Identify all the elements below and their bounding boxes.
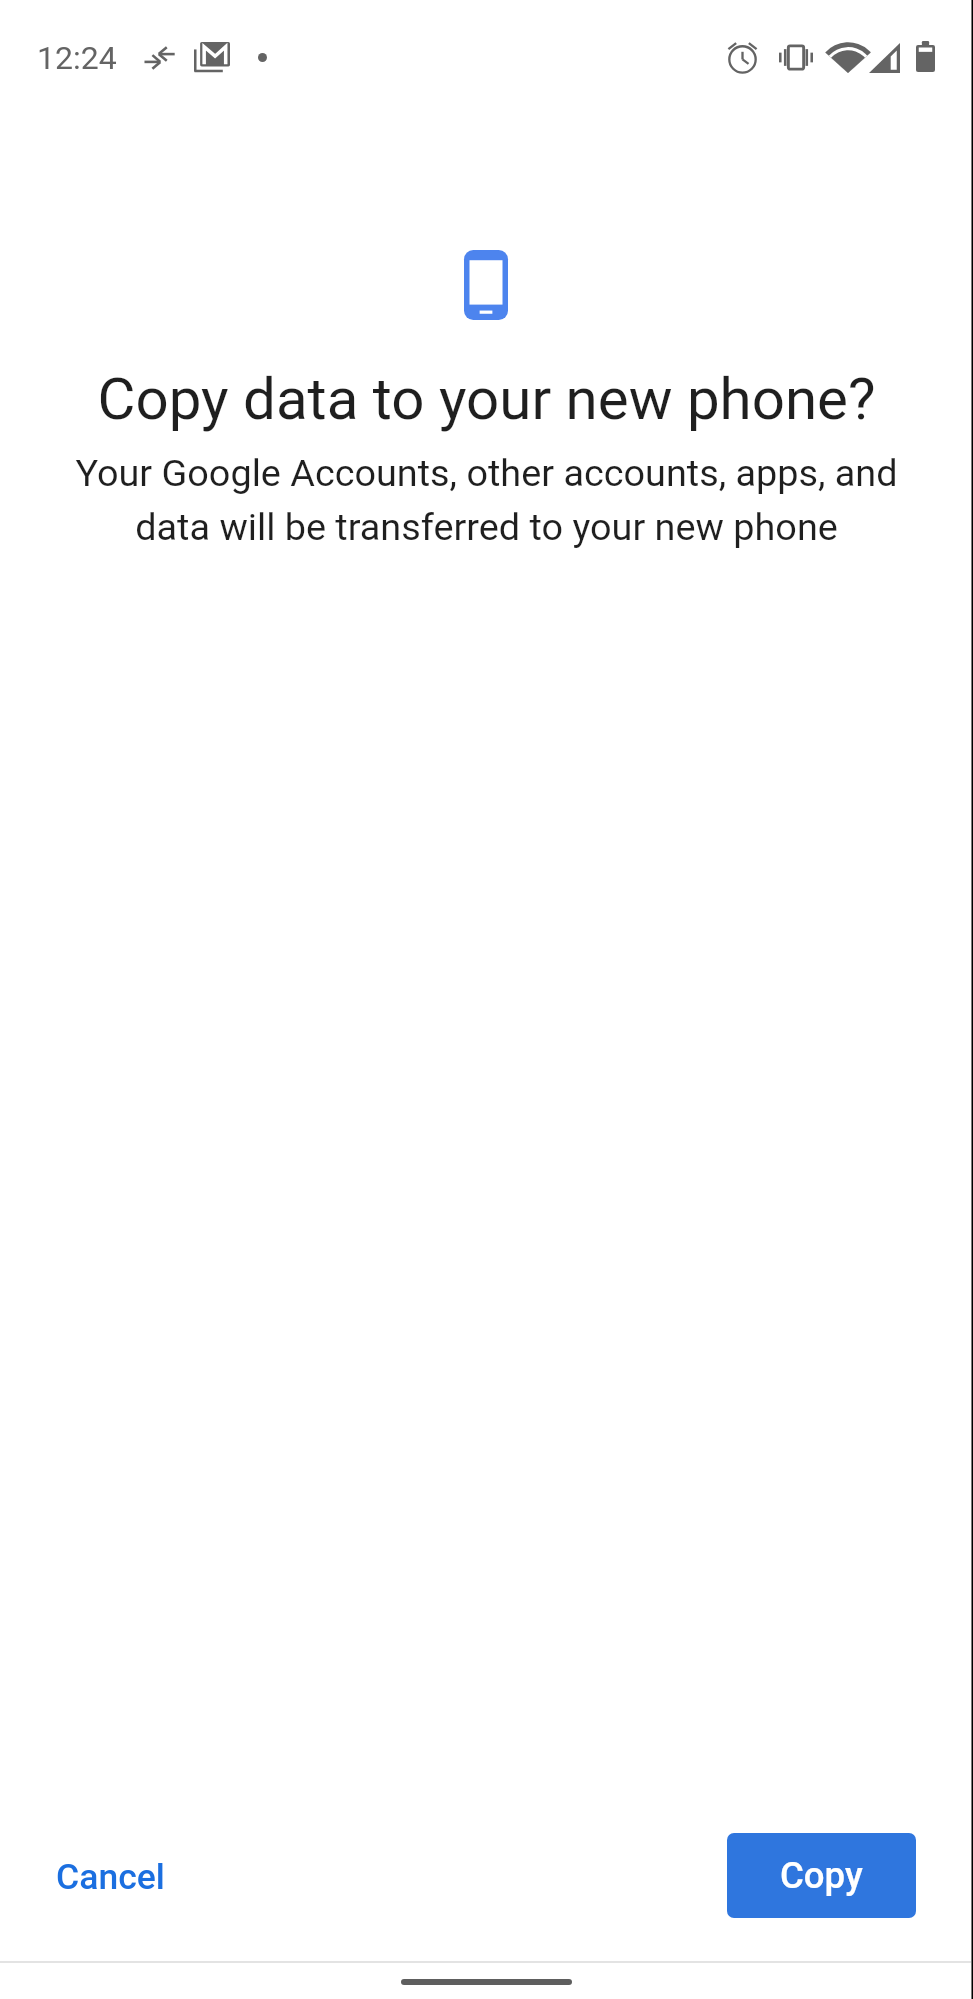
staticText: Copy data to your new phone? (30, 365, 943, 433)
other: Alarm set (727, 42, 758, 74)
button[interactable]: Cancel (20, 1836, 201, 1918)
other: Data transfer (143, 45, 176, 71)
other: Ringer vibrate (779, 44, 813, 71)
staticText: 12:24 (37, 39, 117, 77)
staticText: Your Google Accounts, other accounts, ap… (48, 451, 925, 549)
other: Gmail notification (194, 42, 230, 73)
staticText: Copy (780, 1854, 863, 1897)
staticText: Cancel (56, 1856, 165, 1898)
other: New phone (464, 250, 508, 320)
other: Mobile signal (869, 43, 900, 73)
other: Battery (916, 41, 935, 72)
other: Wi-Fi (830, 42, 866, 73)
button[interactable]: Copy (727, 1833, 916, 1918)
